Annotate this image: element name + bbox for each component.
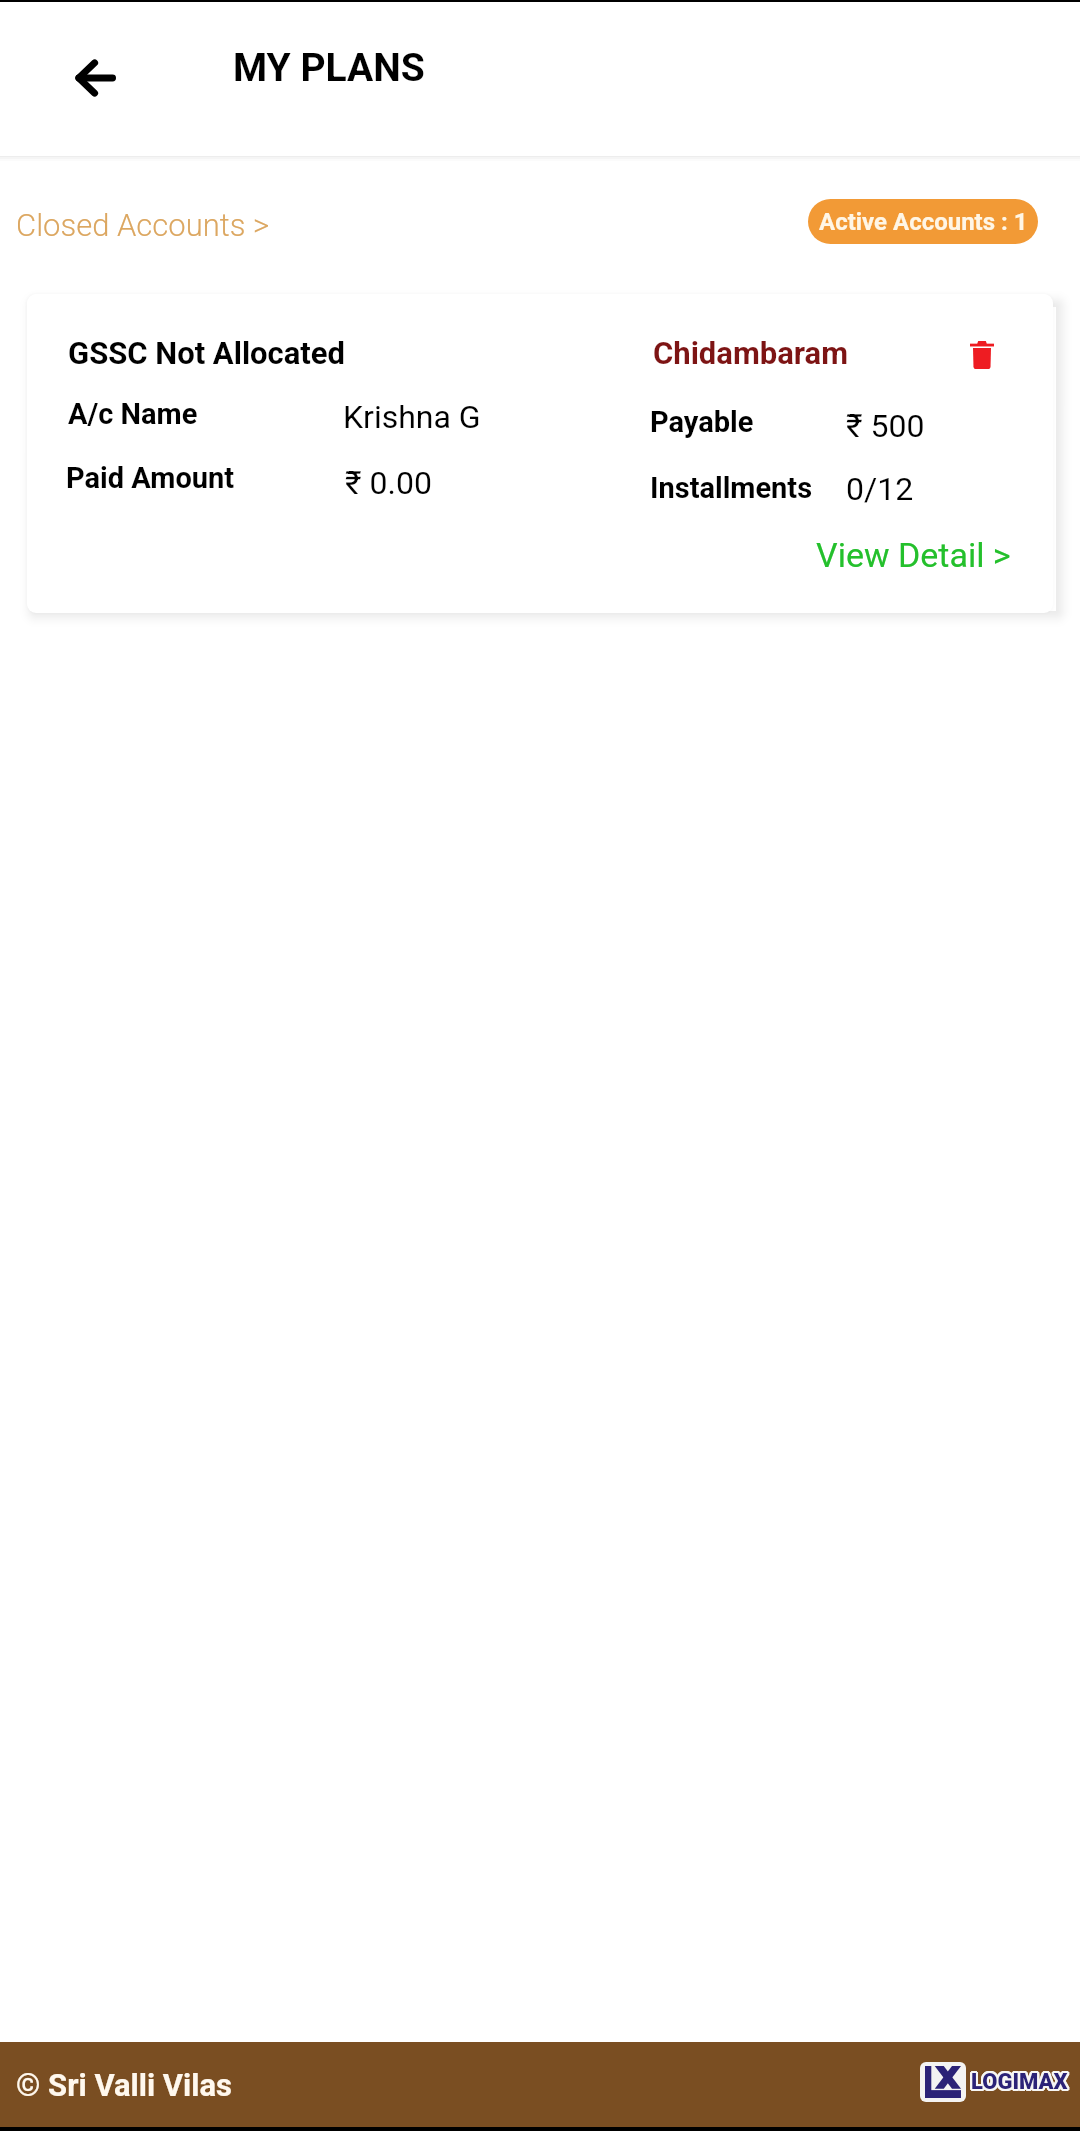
staticText: LOGIMAX: [972, 2070, 1069, 2096]
button[interactable]: GSSC Not Allocated: [27, 294, 1053, 613]
staticText: GSSC Not Allocated: [68, 335, 346, 371]
staticText: LOGIMAX: [971, 2071, 1068, 2097]
button[interactable]: Back: [62, 45, 128, 111]
staticText: LOGIMAX: [972, 2071, 1069, 2097]
staticText: LOGIMAX: [973, 2070, 1070, 2096]
staticText: A/c Name: [68, 397, 198, 431]
staticText: Krishna G: [343, 398, 481, 436]
staticText: ₹ 500: [846, 407, 925, 445]
button[interactable]: View Detail >: [796, 519, 1027, 581]
staticText: LOGIMAX: [973, 2068, 1070, 2094]
staticText: LOGIMAX: [970, 2067, 1067, 2093]
staticText: LOGIMAX: [970, 2070, 1067, 2096]
staticText: © Sri Valli Vilas: [16, 2067, 233, 2103]
staticText: Payable: [650, 405, 754, 439]
staticText: Installments: [650, 471, 813, 505]
staticText: LOGIMAX: [970, 2068, 1067, 2094]
staticText: LOGIMAX: [971, 2068, 1068, 2094]
staticText: LOGIMAX: [970, 2069, 1067, 2095]
staticText: LOGIMAX: [971, 2069, 1068, 2095]
staticText: ₹ 0.00: [345, 464, 432, 502]
button[interactable]: Closed Accounts >: [0, 190, 294, 252]
staticText: LOGIMAX: [973, 2069, 1070, 2095]
staticText: LOGIMAX: [971, 2069, 1068, 2095]
staticText: LOGIMAX: [972, 2067, 1069, 2093]
button[interactable]: Delete plan: [947, 320, 1017, 390]
staticText: LOGIMAX: [969, 2069, 1066, 2095]
staticText: View Detail >: [816, 535, 1011, 575]
staticText: LOGIMAX: [970, 2071, 1067, 2097]
staticText: Paid Amount: [66, 461, 235, 495]
staticText: LOGIMAX: [972, 2069, 1069, 2095]
staticText: LOGIMAX: [969, 2068, 1066, 2094]
staticText: Chidambaram: [653, 335, 849, 371]
button[interactable]: Active Accounts : 1: [808, 199, 1038, 244]
staticText: MY PLANS: [233, 45, 425, 91]
staticText: LOGIMAX: [971, 2070, 1068, 2096]
staticText: LOGIMAX: [972, 2068, 1069, 2094]
staticText: Closed Accounts >: [16, 207, 270, 243]
staticText: LOGIMAX: [971, 2067, 1068, 2093]
staticText: Active Accounts : 1: [819, 208, 1028, 236]
staticText: 0/12: [846, 470, 914, 508]
staticText: LOGIMAX: [969, 2070, 1066, 2096]
